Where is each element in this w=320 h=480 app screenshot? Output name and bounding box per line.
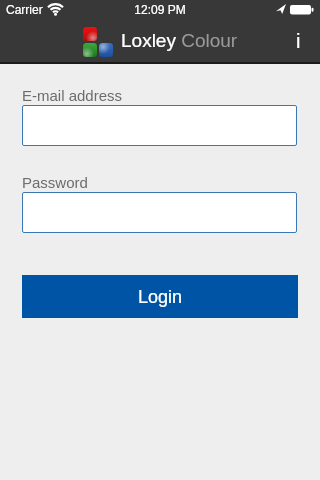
- staticText: E-mail address: [22, 87, 123, 104]
- button[interactable]: [22, 105, 297, 146]
- staticText: Loxley Colour: [121, 30, 238, 51]
- button[interactable]: Login: [22, 275, 298, 318]
- button[interactable]: [22, 192, 297, 233]
- staticText: i: [296, 30, 301, 52]
- button[interactable]: i: [283, 22, 313, 60]
- staticText: Password: [22, 174, 88, 191]
- staticText: 12:09 PM: [0, 3, 320, 16]
- staticText: Login: [138, 287, 183, 307]
- staticText: Carrier: [6, 3, 43, 16]
